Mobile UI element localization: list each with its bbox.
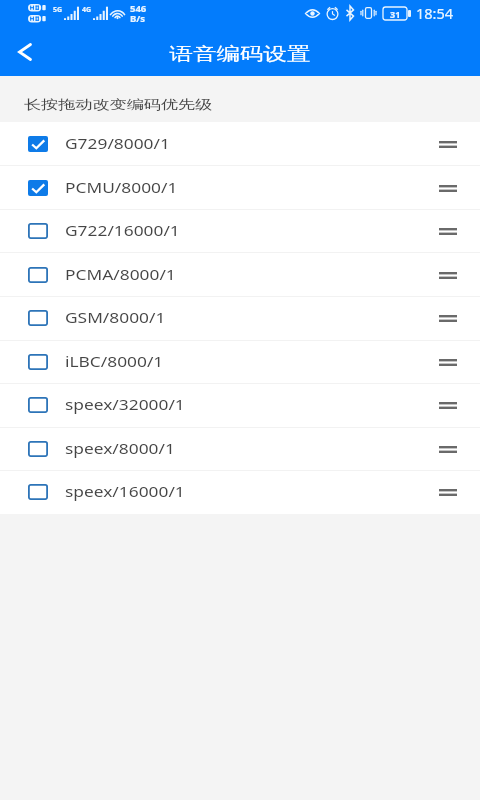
button[interactable]: PCMA/8000/1: [0, 253, 480, 297]
button[interactable]: PCMU/8000/1: [0, 166, 480, 210]
button[interactable]: Reorder iLBC/8000/1: [439, 340, 480, 384]
button[interactable]: Reorder G729/8000/1: [439, 122, 480, 166]
staticText: PCMU/8000/1: [65, 177, 178, 198]
button[interactable]: speex/16000/1: [0, 470, 480, 514]
button[interactable]: Reorder PCMA/8000/1: [439, 253, 480, 297]
button[interactable]: G729/8000/1: [0, 122, 480, 166]
staticText: 18:54: [416, 3, 454, 23]
staticText: 546 B/s: [130, 2, 147, 24]
button[interactable]: speex/8000/1: [0, 427, 480, 471]
button[interactable]: Reorder speex/16000/1: [439, 470, 480, 514]
button[interactable]: Reorder GSM/8000/1: [439, 296, 480, 340]
staticText: G722/16000/1: [65, 220, 180, 241]
staticText: G729/8000/1: [65, 133, 170, 154]
button[interactable]: Reorder speex/32000/1: [439, 383, 480, 427]
button[interactable]: Reorder PCMU/8000/1: [439, 166, 480, 210]
staticText: 语音编码设置: [169, 43, 310, 65]
button[interactable]: speex/32000/1: [0, 383, 480, 427]
staticText: iLBC/8000/1: [65, 351, 164, 372]
staticText: GSM/8000/1: [65, 307, 166, 328]
button[interactable]: Reorder speex/8000/1: [439, 427, 480, 471]
staticText: 5G: [53, 5, 63, 15]
staticText: 4G: [82, 5, 92, 15]
staticText: PCMA/8000/1: [65, 264, 176, 285]
staticText: 31: [390, 8, 401, 20]
button[interactable]: Reorder G722/16000/1: [439, 209, 480, 253]
button[interactable]: GSM/8000/1: [0, 296, 480, 340]
staticText: 长按拖动改变编码优先级: [24, 97, 212, 113]
button[interactable]: G722/16000/1: [0, 209, 480, 253]
button[interactable]: iLBC/8000/1: [0, 340, 480, 384]
staticText: speex/8000/1: [65, 438, 175, 459]
staticText: speex/16000/1: [65, 481, 185, 502]
button[interactable]: Back: [0, 26, 50, 76]
staticText: speex/32000/1: [65, 394, 185, 415]
